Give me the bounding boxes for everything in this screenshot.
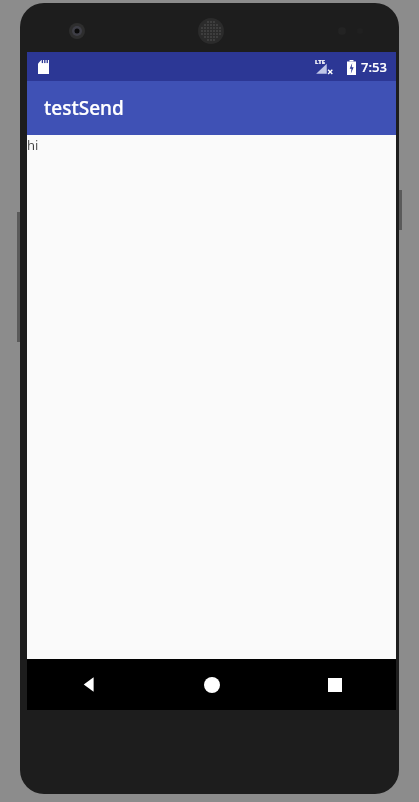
staticText: testSend xyxy=(44,95,124,121)
button[interactable]: Recent apps xyxy=(273,659,396,710)
staticText: LTE xyxy=(315,58,326,66)
button[interactable]: Home xyxy=(150,659,273,710)
staticText: hi xyxy=(27,136,39,154)
button[interactable]: Back xyxy=(27,659,150,710)
staticText: 7:53 xyxy=(361,58,387,76)
